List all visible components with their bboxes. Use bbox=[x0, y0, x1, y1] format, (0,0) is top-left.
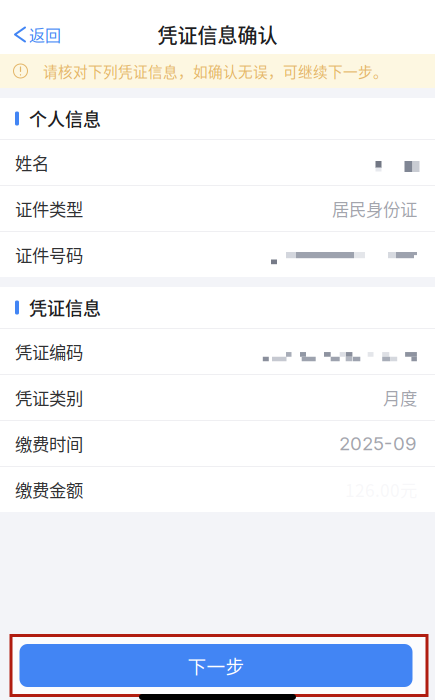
staticText: 居民身份证 bbox=[332, 196, 417, 221]
staticText: 月度 bbox=[383, 385, 417, 410]
button[interactable]: 返回 bbox=[0, 15, 73, 54]
staticText: 2025-09 bbox=[339, 432, 417, 455]
staticText: 缴费金额 bbox=[15, 477, 83, 502]
staticText: 返回 bbox=[29, 23, 61, 46]
staticText: 凭证信息 bbox=[29, 294, 101, 321]
staticText: 证件号码 bbox=[15, 242, 83, 267]
staticText: 个人信息 bbox=[29, 105, 101, 132]
staticText: 凭证信息确认 bbox=[157, 20, 277, 49]
staticText: 姓名 bbox=[15, 150, 49, 175]
staticText: 下一步 bbox=[187, 652, 244, 679]
staticText: 证件类型 bbox=[15, 196, 83, 221]
staticText: 缴费时间 bbox=[15, 431, 83, 456]
staticText: 凭证编码 bbox=[15, 339, 83, 364]
staticText: 凭证类别 bbox=[15, 385, 83, 410]
button[interactable]: 下一步 bbox=[22, 644, 415, 687]
staticText: 请核对下列凭证信息，如确认无误，可继续下一步。 bbox=[43, 60, 388, 82]
